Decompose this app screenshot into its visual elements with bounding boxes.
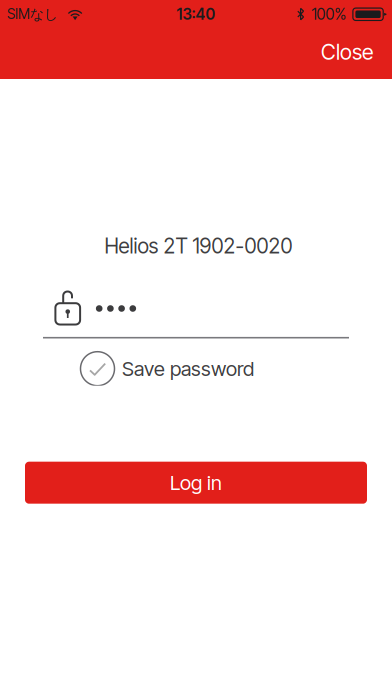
staticText: Close [321,39,373,65]
button[interactable]: Password [43,290,349,339]
staticText: Helios 2T 1902-0020 [104,233,292,258]
button[interactable]: Log in [25,462,367,504]
staticText: Save password [122,357,254,381]
staticText: SIMなし [7,5,58,23]
staticText: 13:40 [176,5,215,24]
staticText: Log in [170,471,222,495]
button[interactable]: Close [311,30,381,75]
staticText: 100% [311,5,346,24]
button[interactable]: Save password [80,352,254,386]
